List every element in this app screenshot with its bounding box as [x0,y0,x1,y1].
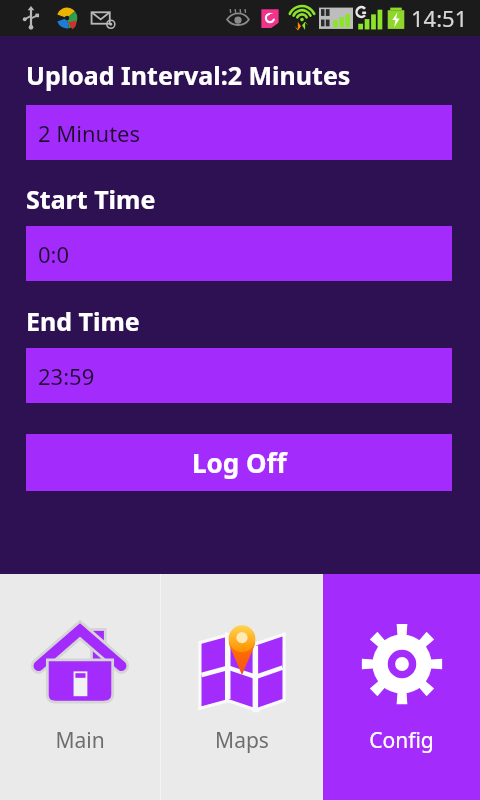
button[interactable]: Config [323,574,480,800]
staticText: End Time [26,304,140,338]
button[interactable]: 2 Minutes [26,105,452,160]
staticText: Main [55,726,105,755]
button[interactable]: Maps [161,574,323,800]
staticText: Upload Interval:2 Minutes [26,58,351,92]
staticText: Maps [215,726,269,755]
staticText: 23:59 [38,361,95,391]
button[interactable]: 0:0 [26,226,452,281]
staticText: Log Off [192,445,287,480]
button[interactable]: 23:59 [26,348,452,403]
button[interactable]: Main [0,574,160,800]
button[interactable]: Log Off [26,434,452,491]
staticText: 2 Minutes [38,118,141,148]
staticText: 0:0 [38,239,70,269]
staticText: 14:51 [411,3,468,33]
staticText: Config [369,726,434,755]
staticText: Start Time [26,182,156,216]
